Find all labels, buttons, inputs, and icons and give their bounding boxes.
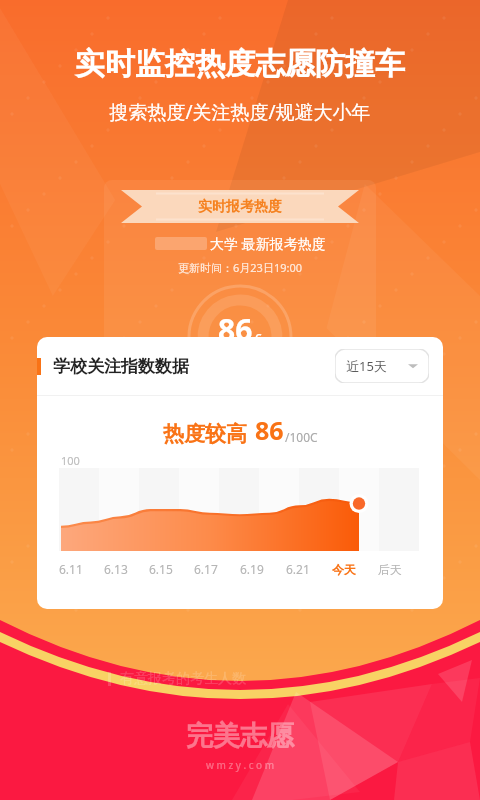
staticText: 6.11 <box>59 561 83 577</box>
staticText: 实时监控热度志愿防撞车 <box>75 45 405 83</box>
staticText: 大学 最新报考热度 <box>210 234 326 253</box>
staticText: 实时报考热度 <box>198 198 282 216</box>
staticText: 6.13 <box>104 561 128 577</box>
button[interactable]: 实时报考热度 <box>121 190 359 223</box>
staticText: 热度较高 <box>163 421 247 447</box>
staticText: 搜索热度/关注热度/规避大小年 <box>109 99 371 125</box>
staticText: 有意报考的考生人数 <box>120 670 246 688</box>
staticText: w m z y . c o m <box>206 758 275 772</box>
staticText: 86 <box>255 413 284 447</box>
staticText: 后天 <box>378 562 402 577</box>
staticText: c <box>255 327 262 346</box>
staticText: 6.17 <box>194 561 218 577</box>
staticText: 6.21 <box>286 561 310 577</box>
staticText: 6.19 <box>240 561 264 577</box>
staticText: 100 <box>61 453 80 468</box>
staticText: 86 <box>218 309 253 350</box>
staticText: 今天 <box>332 562 356 577</box>
staticText: 6.15 <box>149 561 173 577</box>
staticText: 近15天 <box>346 357 387 375</box>
button[interactable]: 近15天 <box>335 349 429 383</box>
staticText: /100C <box>285 429 318 445</box>
staticText: 学校关注指数数据 <box>53 356 189 377</box>
staticText: 完美志愿 <box>186 719 294 753</box>
staticText: 更新时间：6月23日19:00 <box>178 260 302 275</box>
other: Open range picker <box>408 361 418 371</box>
